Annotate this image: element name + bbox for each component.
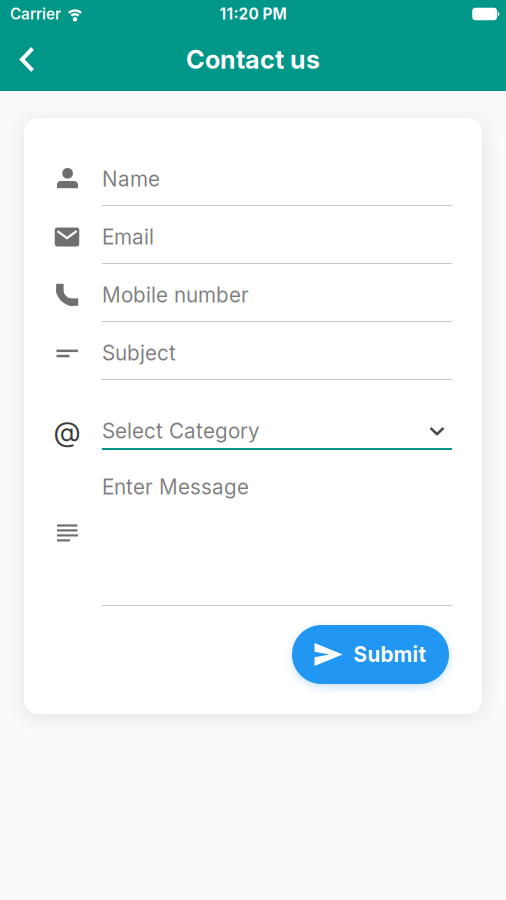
button[interactable]: Mobile number [24,264,482,322]
staticText: Carrier [10,5,61,23]
button[interactable]: @ [24,380,482,450]
staticText: Mobile number [102,282,249,307]
staticText: Name [102,166,160,191]
button[interactable]: Enter Message [24,450,482,606]
button[interactable]: Name [24,118,482,206]
staticText: Select Category [102,418,260,443]
staticText: 11:20 PM [219,5,286,23]
staticText: Submit [353,642,426,667]
staticText: @ [53,414,80,448]
staticText: Enter Message [102,474,249,499]
staticText: Email [102,224,154,249]
button[interactable]: Subject [24,322,482,380]
button[interactable] [0,46,48,73]
button[interactable]: Email [24,206,482,264]
staticText: Subject [102,340,176,365]
staticText: Contact us [186,44,320,75]
button[interactable]: Submit [292,625,449,684]
